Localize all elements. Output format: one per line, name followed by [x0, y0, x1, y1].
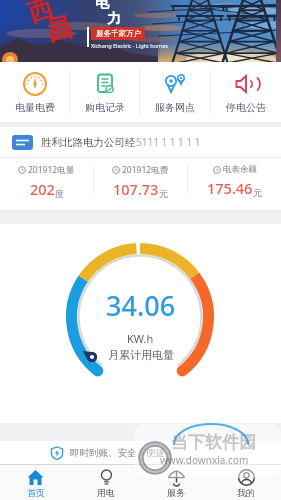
staticText: 停电公告: [226, 101, 266, 114]
button[interactable]: 我的: [211, 465, 281, 500]
staticText: 服务: [167, 487, 185, 498]
staticText: 201912电费: [122, 164, 169, 176]
staticText: 元: [253, 187, 262, 198]
staticText: KW.h: [127, 331, 154, 346]
button[interactable]: 首页: [0, 465, 71, 500]
button[interactable]: 停电公告: [211, 62, 281, 122]
staticText: 5111 1 1 1 1 1: [136, 135, 201, 149]
button[interactable]: 即时到账、安全、便捷: [0, 441, 281, 464]
staticText: www.downxia.com: [160, 453, 249, 467]
staticText: 购电记录: [85, 101, 125, 114]
staticText: 西: [24, 0, 57, 29]
button[interactable]: 服务: [141, 465, 211, 500]
staticText: 昌: [43, 10, 76, 48]
staticText: 力: [107, 10, 121, 28]
staticText: 服务千家万户: [96, 29, 141, 38]
staticText: 175.46: [207, 178, 253, 198]
staticText: 电量电费: [15, 101, 55, 114]
staticText: 即时到账、安全、便捷: [70, 447, 165, 459]
staticText: 当下软件园: [171, 432, 256, 453]
staticText: 用电: [97, 487, 115, 498]
staticText: 胜利北路电力公司经: [41, 136, 136, 149]
button[interactable]: 201912电量: [0, 158, 93, 210]
staticText: 元: [159, 188, 168, 199]
staticText: 107.73: [113, 179, 159, 199]
button[interactable]: 服务网点: [140, 62, 210, 122]
staticText: 服务网点: [155, 101, 195, 114]
button[interactable]: 用电: [71, 465, 141, 500]
staticText: 电: [95, 0, 109, 12]
button[interactable]: 购电记录: [70, 62, 139, 122]
staticText: 我的: [237, 487, 255, 498]
staticText: 度: [55, 188, 64, 199]
button[interactable]: 201912电费: [94, 158, 187, 210]
staticText: 月累计用电量: [108, 348, 174, 362]
staticText: 201912电量: [28, 164, 75, 176]
staticText: 电表余额: [223, 164, 257, 175]
button[interactable]: 电量电费: [0, 62, 69, 122]
button[interactable]: 胜利北路电力公司经: [0, 127, 281, 157]
button[interactable]: 电表余额: [188, 158, 281, 210]
staticText: Xichang Electric · Light homes: [91, 42, 168, 49]
staticText: 首页: [27, 487, 45, 498]
staticText: 202: [30, 179, 55, 199]
staticText: 34.06: [106, 287, 176, 324]
